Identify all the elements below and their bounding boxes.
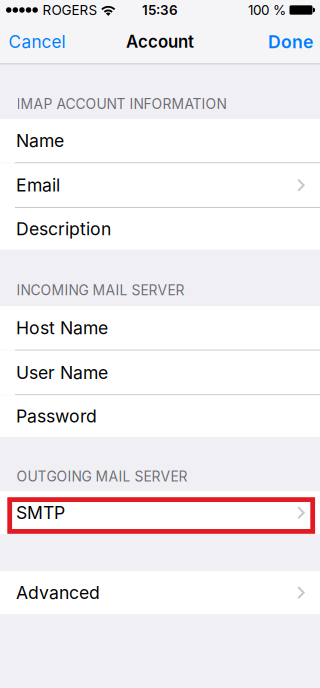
button[interactable]: SMTP [0,491,320,534]
staticText: ROGERS [42,2,97,18]
button[interactable]: Advanced [0,571,320,614]
button[interactable]: Cancel [0,20,75,63]
staticText: Email [16,174,60,196]
staticText: Advanced [16,582,100,603]
staticText: Description [16,218,111,239]
staticText: Host Name [16,317,108,338]
staticText: Account [126,32,194,52]
staticText: 15:36 [142,2,178,18]
staticText: SMTP [16,502,65,523]
staticText: Password [16,405,97,427]
button[interactable]: Password [0,395,320,437]
staticText: Done [268,31,313,52]
staticText: OUTGOING MAIL SERVER [16,468,187,485]
button[interactable]: User Name [0,351,320,394]
button[interactable]: Host Name [0,306,320,350]
button[interactable]: Done [259,20,320,63]
staticText: 100 % [248,2,286,18]
button[interactable]: Email [0,163,320,207]
button[interactable]: Name [0,119,320,162]
button[interactable]: Description [0,208,320,250]
staticText: INCOMING MAIL SERVER [16,282,184,299]
staticText: User Name [16,362,108,383]
staticText: IMAP ACCOUNT INFORMATION [16,95,226,112]
staticText: Cancel [9,31,66,52]
staticText: Name [16,130,64,151]
